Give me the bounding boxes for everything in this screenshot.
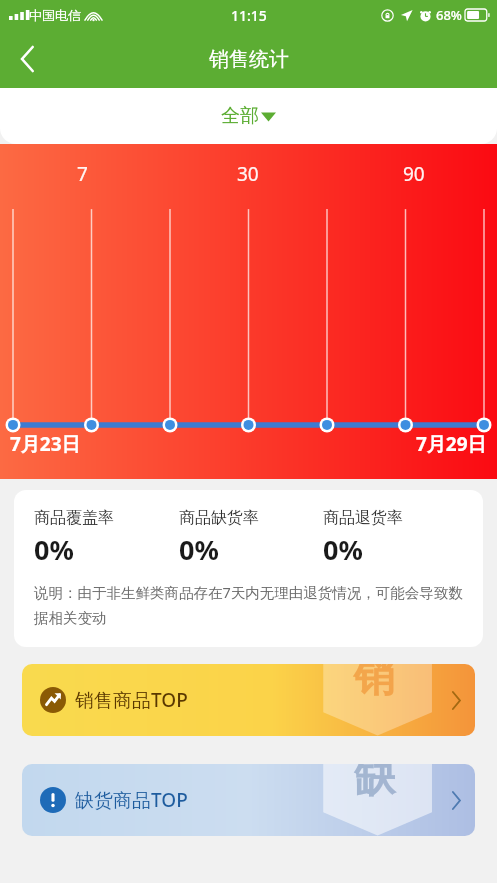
staticText: 0% <box>179 531 219 568</box>
staticText: 7 <box>77 161 88 187</box>
staticText: 销售统计 <box>209 47 289 72</box>
staticText: 缺 <box>354 764 395 804</box>
staticText: 全部 <box>221 104 259 128</box>
staticText: 中国电信 <box>29 7 81 23</box>
staticText: 11:15 <box>231 6 267 25</box>
staticText: 0% <box>34 531 74 568</box>
staticText: 30 <box>237 161 259 187</box>
staticText: 说明：由于非生鲜类商品存在7天内无理由退货情况，可能会导致数据相关变动 <box>34 582 467 627</box>
button[interactable]: 90 <box>331 144 497 204</box>
staticText: 90 <box>403 161 425 187</box>
staticText: 0% <box>323 531 363 568</box>
staticText: 68% <box>436 6 462 24</box>
staticText: 商品退货率 <box>323 508 403 528</box>
staticText: 销售商品TOP <box>75 687 188 713</box>
button[interactable]: 7 <box>0 144 165 204</box>
staticText: 销 <box>354 664 395 704</box>
staticText: 7月29日 <box>416 431 487 457</box>
staticText: 商品缺货率 <box>179 508 259 528</box>
staticText: 缺货商品TOP <box>75 787 188 813</box>
staticText: 商品覆盖率 <box>34 508 114 528</box>
button[interactable]: Back <box>0 32 54 86</box>
staticText: 7月23日 <box>10 431 81 457</box>
button[interactable]: 销 <box>22 664 475 736</box>
button[interactable]: 缺 <box>22 764 475 836</box>
button[interactable]: 30 <box>165 144 331 204</box>
button[interactable]: 全部 <box>0 88 497 144</box>
